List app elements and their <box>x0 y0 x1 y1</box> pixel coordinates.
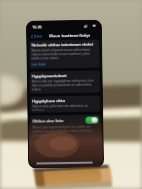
button[interactable]: Lue lisää <box>31 61 46 67</box>
staticText: Näin lisäät sen hyppäyksen aktivoituu, k… <box>32 79 98 92</box>
button[interactable]: Hyppäysasetukset <box>30 70 100 94</box>
staticText: Ohitus alue lista <box>32 118 63 124</box>
staticText: Tärkeää: ohitus toiminnon ehdot <box>31 42 93 48</box>
staticText: Hyppäysasetukset <box>32 73 67 79</box>
staticText: Hyppäyksen ehto <box>32 98 66 104</box>
staticText: 16.26 <box>32 24 42 30</box>
staticText: Nämä ohjeet ohjaavat sinua valitsemaan o… <box>31 48 97 61</box>
staticText: Valitse ehto jolla toiminto aktivoituu j… <box>32 104 98 111</box>
button[interactable]: Tärkeää: ohitus toiminnon ehdot <box>29 40 99 69</box>
button[interactable]: Takaisin <box>30 33 43 39</box>
staticText: Lue lisää <box>31 61 46 67</box>
staticText: Esto <box>34 33 43 38</box>
button[interactable]: Kytkin <box>85 117 98 124</box>
button[interactable]: Ohitus alue lista <box>30 114 101 147</box>
staticText: Muun tuotteen lisäys <box>49 33 91 38</box>
staticText: Näin lisäät hyppäysohjeen kun vaihe on p… <box>32 125 99 138</box>
button[interactable]: Hyppäyksen ehto <box>30 95 100 113</box>
